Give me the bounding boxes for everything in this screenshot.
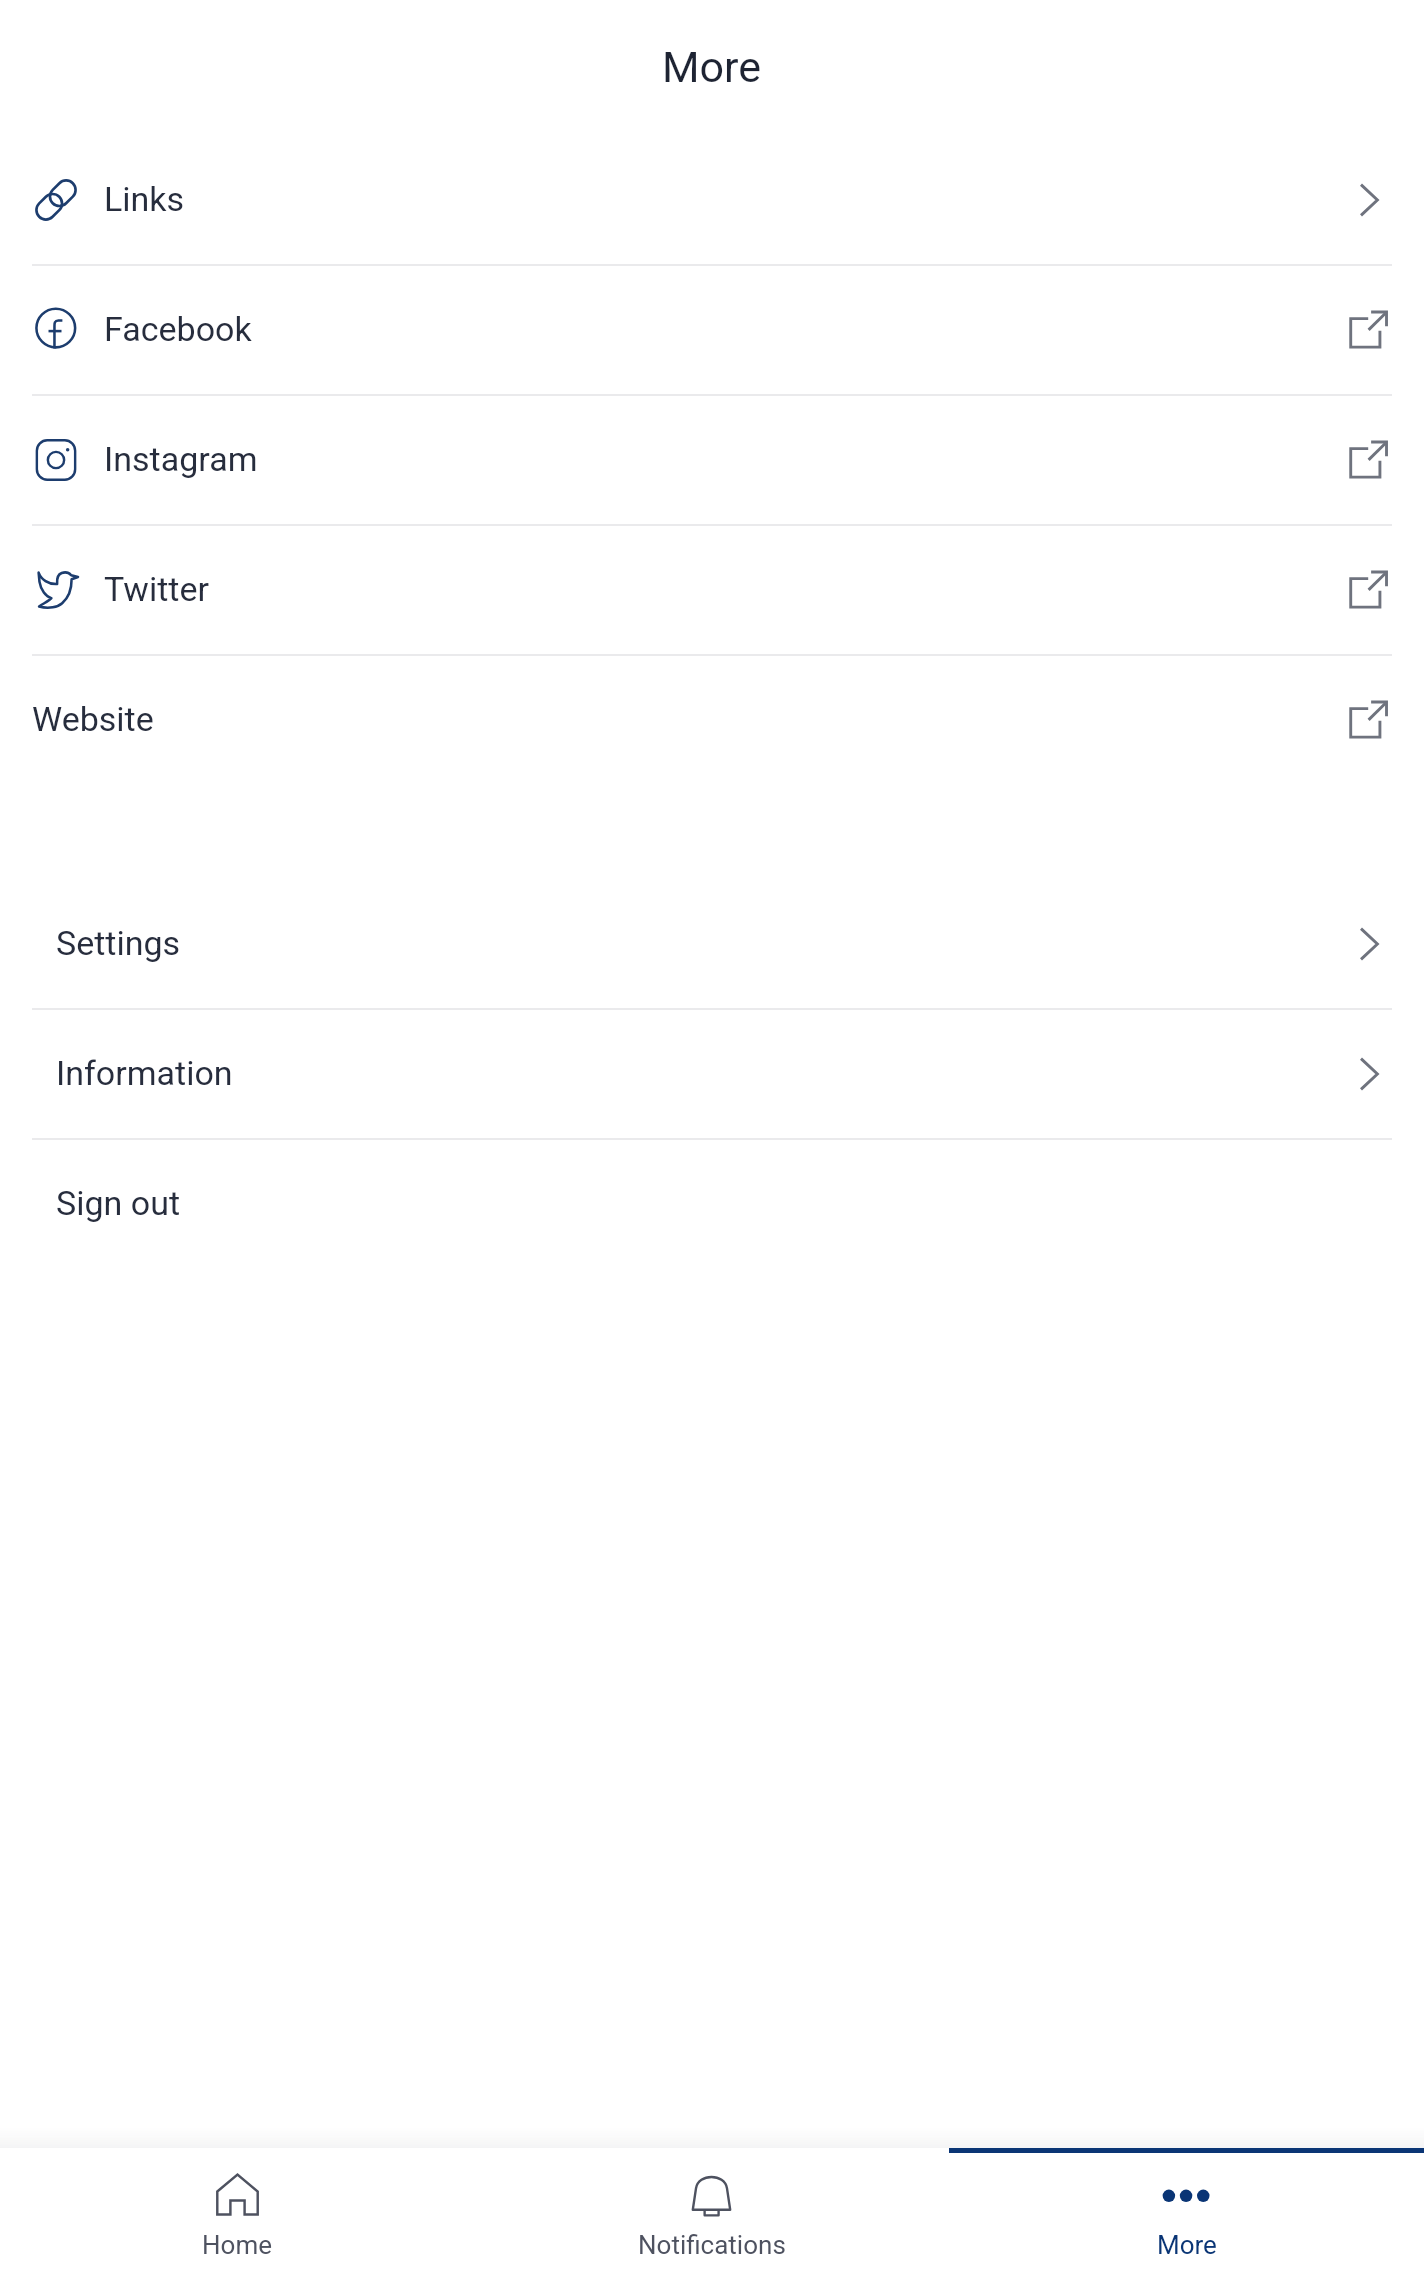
staticText: Home: [202, 2230, 272, 2260]
other: Open external link: [1350, 310, 1390, 350]
staticText: Links: [104, 179, 185, 219]
button[interactable]: Links: [0, 136, 1424, 264]
other: Open: [1350, 1054, 1390, 1094]
staticText: Website: [32, 699, 154, 739]
staticText: Information: [56, 1053, 233, 1093]
staticText: More: [1157, 2230, 1217, 2260]
staticText: Instagram: [104, 439, 258, 479]
other: Open: [1350, 924, 1390, 964]
other: Open external link: [1350, 700, 1390, 740]
button[interactable]: Website: [0, 656, 1424, 784]
button[interactable]: Notifications: [474, 2148, 949, 2276]
staticText: More: [662, 42, 762, 92]
button[interactable]: Sign out: [0, 1140, 1424, 1268]
staticText: Settings: [56, 923, 181, 963]
button[interactable]: More: [949, 2148, 1424, 2276]
button[interactable]: Information: [0, 1010, 1424, 1138]
other: Open external link: [1350, 440, 1390, 480]
other: More: [1165, 2173, 1208, 2216]
staticText: Facebook: [104, 309, 252, 349]
other: Open: [1350, 180, 1390, 220]
staticText: Notifications: [638, 2230, 786, 2260]
button[interactable]: Home: [0, 2148, 474, 2276]
button[interactable]: Settings: [0, 880, 1424, 1008]
button[interactable]: Facebook: [0, 266, 1424, 394]
button[interactable]: Instagram: [0, 396, 1424, 524]
other: Open external link: [1350, 570, 1390, 610]
staticText: Twitter: [104, 569, 209, 609]
staticText: Sign out: [56, 1183, 181, 1223]
button[interactable]: Twitter: [0, 526, 1424, 654]
